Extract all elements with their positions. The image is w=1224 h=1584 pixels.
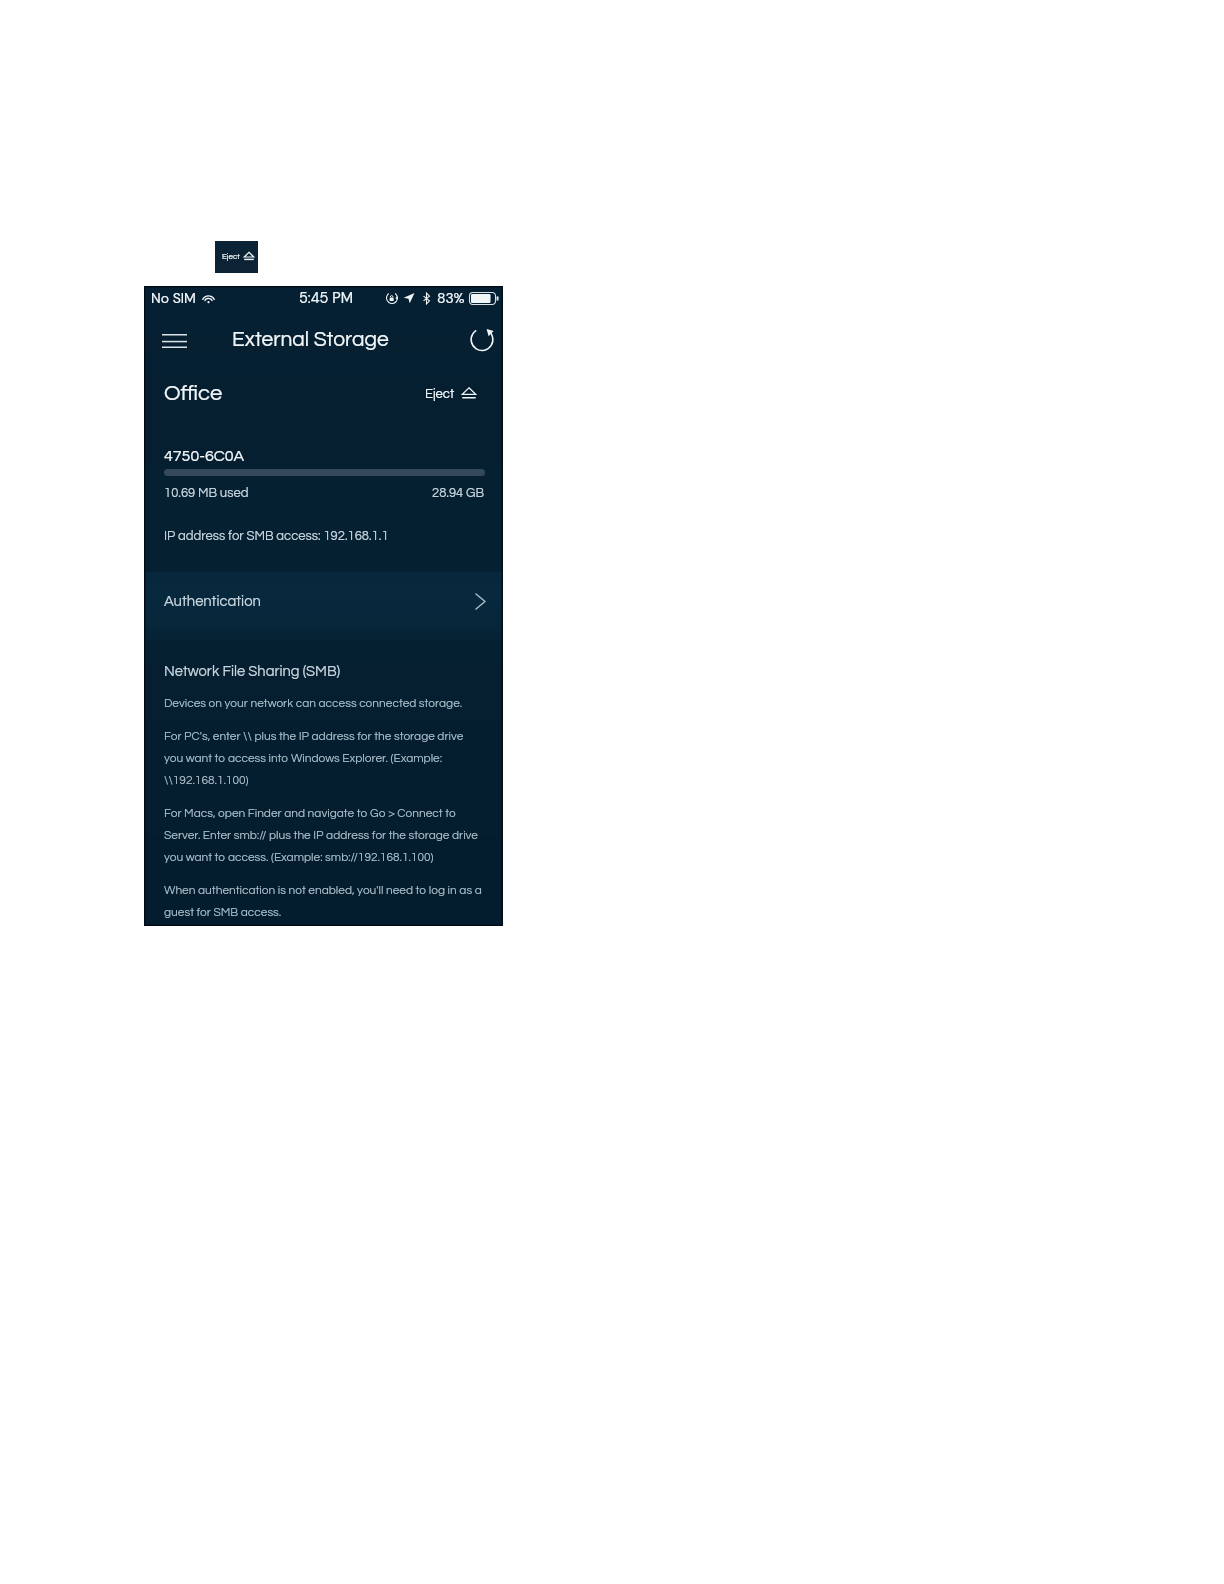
button[interactable]: Refresh bbox=[465, 322, 501, 358]
button[interactable]: Open navigation menu bbox=[154, 320, 194, 360]
staticText: 10.69 MB used bbox=[164, 484, 249, 500]
staticText: Eject bbox=[222, 252, 240, 260]
button[interactable]: Eject bbox=[215, 241, 258, 273]
staticText: For PC's, enter \\ plus the IP address f… bbox=[164, 723, 485, 789]
staticText: Authentication bbox=[164, 594, 261, 609]
staticText: 4750-6C0A bbox=[164, 446, 245, 465]
staticText: Network File Sharing (SMB) bbox=[164, 659, 341, 681]
staticText: Eject bbox=[425, 387, 455, 400]
staticText: 28.94 GB bbox=[432, 484, 485, 500]
staticText: Devices on your network can access conne… bbox=[164, 690, 463, 712]
staticText: For Macs, open Finder and navigate to Go… bbox=[164, 800, 485, 866]
staticText: 5:45 PM bbox=[299, 289, 353, 308]
staticText: No SIM bbox=[151, 289, 196, 307]
button[interactable]: Eject bbox=[425, 386, 476, 400]
staticText: Office bbox=[164, 382, 223, 405]
staticText: 83% bbox=[437, 289, 465, 307]
staticText: When authentication is not enabled, you'… bbox=[164, 877, 485, 921]
staticText: IP address for SMB access: 192.168.1.1 bbox=[164, 527, 389, 543]
button[interactable]: Authentication bbox=[144, 573, 503, 629]
staticText: External Storage bbox=[232, 329, 389, 351]
